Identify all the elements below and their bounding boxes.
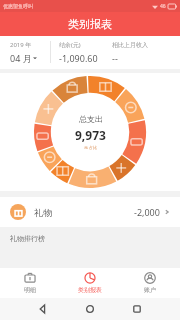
staticText: 46 (160, 3, 166, 10)
button[interactable]: 账户 (120, 268, 180, 298)
staticText: 类别报表 (68, 17, 112, 31)
staticText: 礼物 (34, 207, 52, 218)
staticText: 元 占比 (84, 145, 98, 150)
button[interactable]: 类别报表 (60, 268, 120, 298)
staticText: 相比上月收入 (112, 41, 148, 49)
staticText: 优惠望鱼呼叫 (3, 3, 33, 9)
staticText: 类别报表 (78, 286, 102, 294)
button[interactable]: 明细 (0, 268, 60, 298)
staticText: 04 月 (10, 52, 32, 64)
staticText: 9,973 (75, 127, 106, 143)
staticText: -1,090.60 (59, 52, 98, 64)
staticText: 2019 年 (10, 41, 32, 49)
staticText: 明细 (24, 286, 36, 294)
button[interactable]: 礼物 (0, 197, 180, 227)
staticText: 结余(元) (59, 41, 81, 49)
staticText: -- (112, 52, 118, 64)
button[interactable]: 04 月 (10, 52, 37, 64)
staticText: -2,000 (134, 206, 160, 218)
staticText: 礼物排行榜 (10, 234, 45, 243)
staticText: 账户 (144, 286, 156, 294)
staticText: 总支出 (79, 114, 103, 124)
